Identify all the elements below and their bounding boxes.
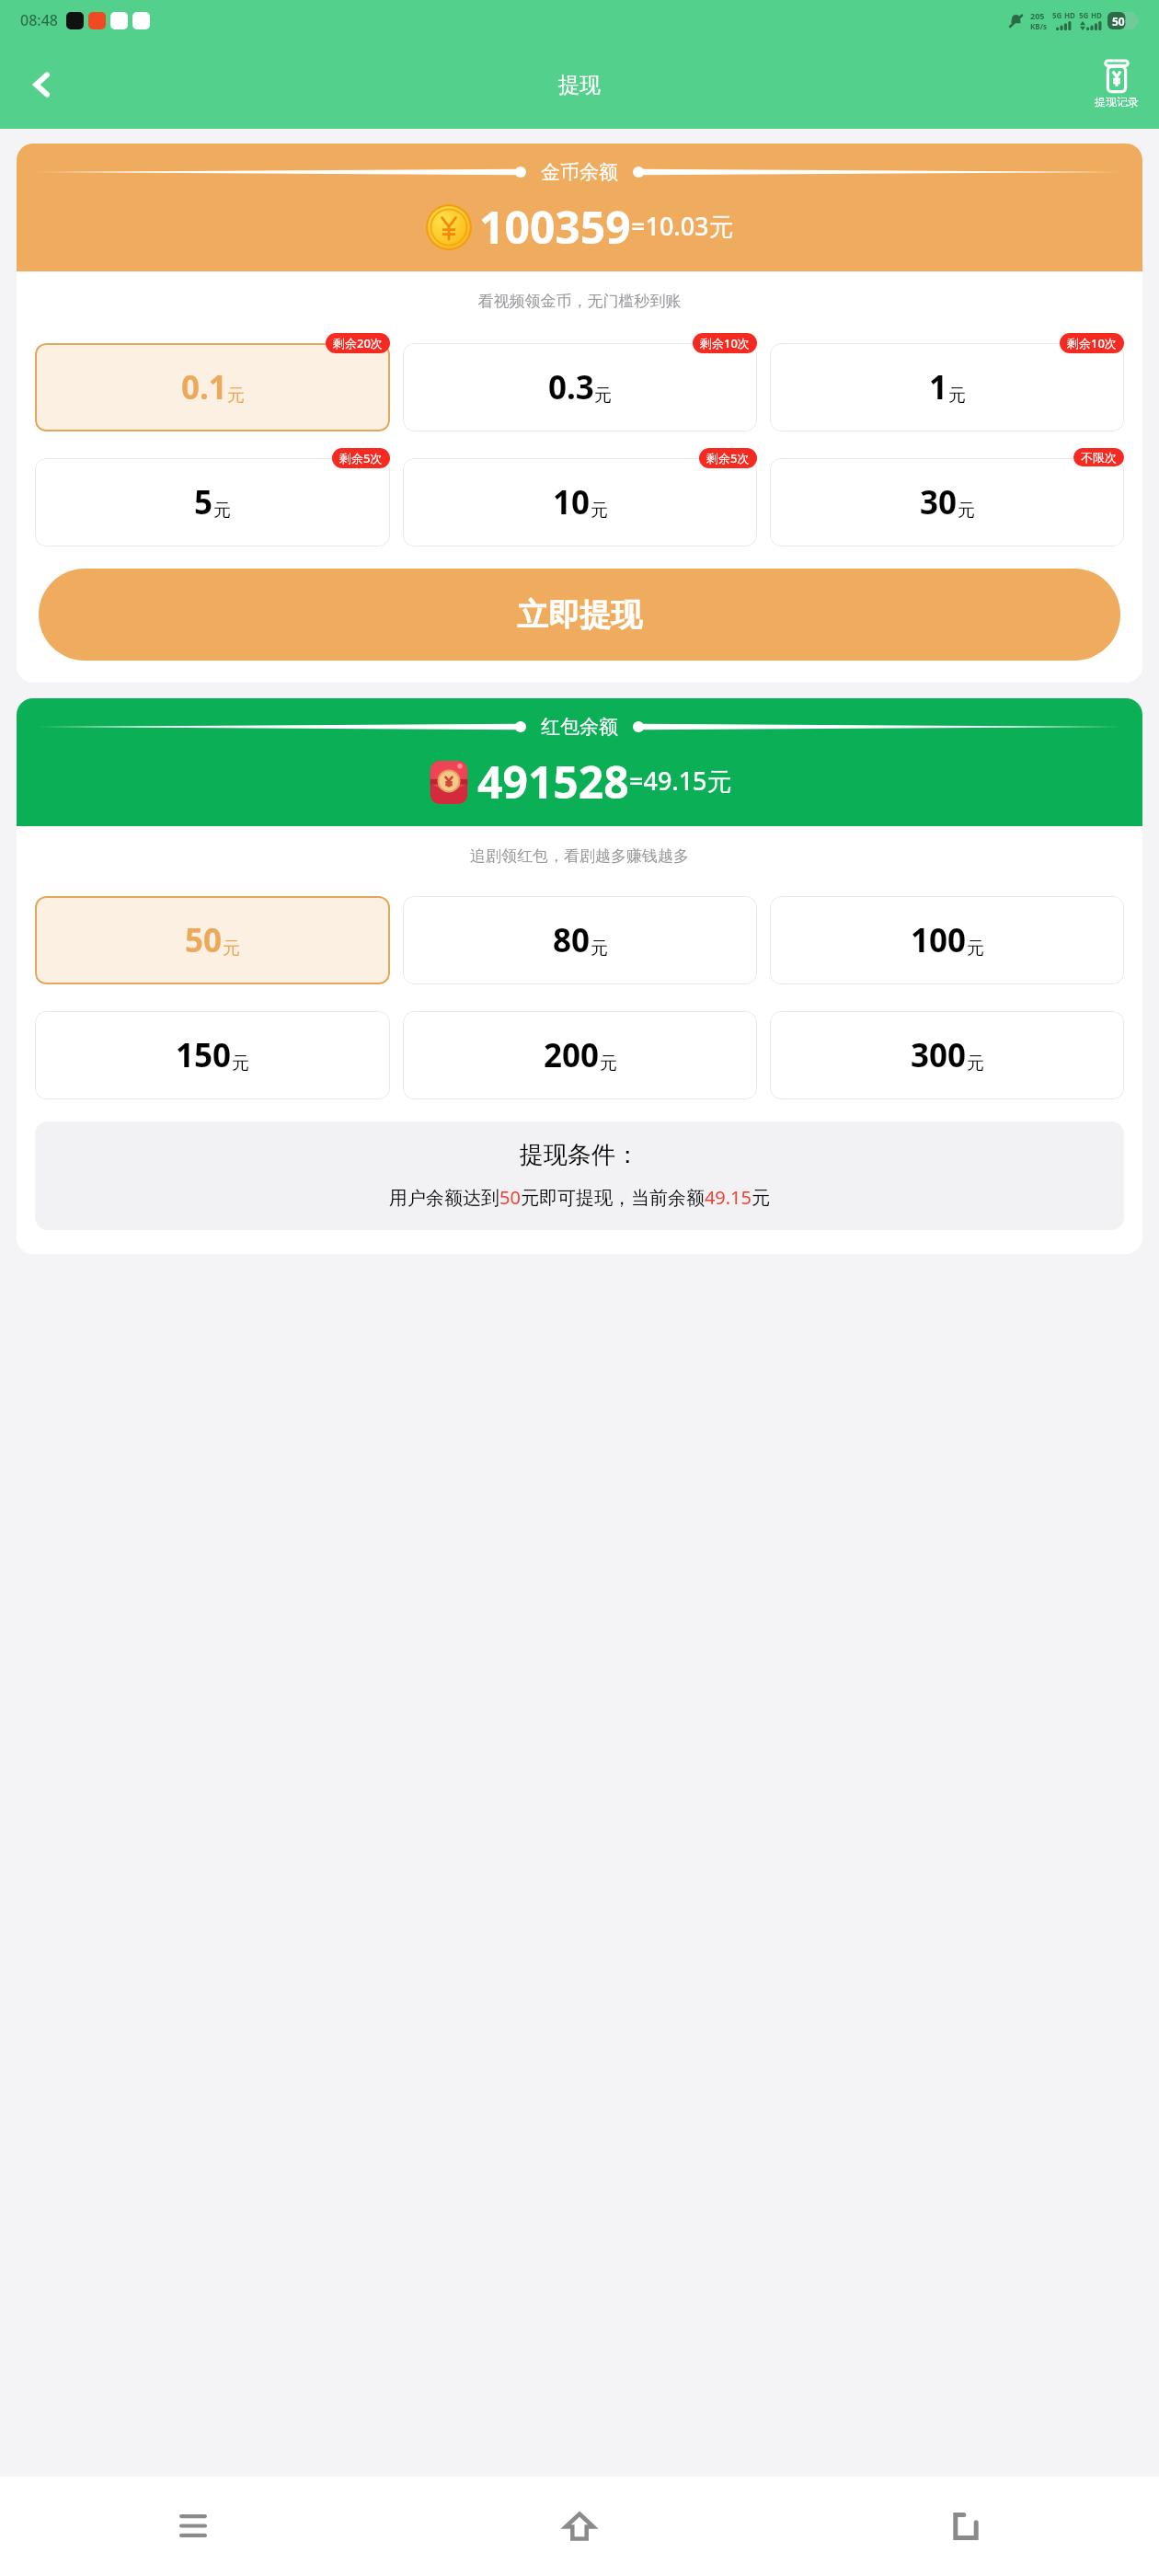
staticText: 50 xyxy=(185,918,223,962)
staticText: 剩余10次 xyxy=(700,335,750,351)
button[interactable]: 30 xyxy=(770,458,1124,546)
staticText: 元 xyxy=(594,385,612,407)
button[interactable]: 5 xyxy=(35,458,390,546)
button[interactable]: 80 xyxy=(403,896,757,984)
staticText: 元 xyxy=(967,1052,984,1075)
button[interactable]: 立即提现 xyxy=(39,569,1120,661)
staticText: 205 xyxy=(1030,10,1045,21)
button[interactable]: 200 xyxy=(403,1011,757,1099)
staticText: 200 xyxy=(544,1033,600,1077)
button[interactable]: Back xyxy=(9,52,75,118)
staticText: 剩余5次 xyxy=(339,450,383,466)
staticText: 5G xyxy=(1052,10,1062,20)
staticText: 元 xyxy=(223,937,240,960)
staticText: 元 xyxy=(227,385,245,407)
button[interactable]: 0.1 xyxy=(35,343,390,431)
staticText: 491528 xyxy=(477,752,629,811)
button[interactable]: 提现记录 xyxy=(1091,61,1142,109)
staticText: =10.03元 xyxy=(631,209,734,243)
button[interactable]: Home xyxy=(386,2477,773,2576)
button[interactable]: 10 xyxy=(403,458,757,546)
staticText: 立即提现 xyxy=(517,595,642,635)
staticText: 金币余额 xyxy=(541,160,618,184)
staticText: 08:48 xyxy=(20,10,58,30)
staticText: 150 xyxy=(176,1033,232,1077)
staticText: 用户余额达到50元即可提现，当前余额49.15元 xyxy=(389,1185,770,1210)
staticText: 100359 xyxy=(479,197,631,257)
staticText: 0.3 xyxy=(548,365,594,409)
button[interactable]: 1 xyxy=(770,343,1124,431)
button[interactable]: 50 xyxy=(35,896,390,984)
staticText: 元 xyxy=(591,937,608,960)
staticText: 剩余20次 xyxy=(333,335,383,351)
button[interactable]: 300 xyxy=(770,1011,1124,1099)
staticText: 元 xyxy=(232,1052,249,1075)
staticText: HD xyxy=(1091,10,1102,20)
staticText: 不限次 xyxy=(1081,450,1117,465)
staticText: 元 xyxy=(213,500,231,522)
staticText: 元 xyxy=(967,937,984,960)
staticText: 1 xyxy=(929,365,948,409)
button[interactable]: 0.3 xyxy=(403,343,757,431)
staticText: 10 xyxy=(553,480,591,524)
staticText: 元 xyxy=(958,500,975,522)
staticText: HD xyxy=(1064,10,1075,20)
staticText: 剩余5次 xyxy=(706,450,750,466)
button[interactable]: 150 xyxy=(35,1011,390,1099)
button[interactable]: 100 xyxy=(770,896,1124,984)
staticText: 5G xyxy=(1079,10,1089,20)
staticText: 30 xyxy=(920,480,958,524)
staticText: KB/s xyxy=(1030,21,1047,31)
staticText: 提现条件： xyxy=(520,1140,639,1170)
staticText: 元 xyxy=(591,500,608,522)
staticText: 追剧领红包，看剧越多赚钱越多 xyxy=(17,846,1142,866)
button[interactable]: Recents xyxy=(0,2477,386,2576)
staticText: 剩余10次 xyxy=(1067,335,1117,351)
button[interactable]: Back xyxy=(773,2477,1159,2576)
staticText: 50 xyxy=(1112,14,1125,29)
staticText: 300 xyxy=(911,1033,967,1077)
staticText: 看视频领金币，无门槛秒到账 xyxy=(17,292,1142,311)
staticText: 100 xyxy=(911,918,967,962)
staticText: 提现记录 xyxy=(1095,95,1139,109)
staticText: =49.15元 xyxy=(629,764,732,798)
staticText: 5 xyxy=(194,480,213,524)
staticText: 红包余额 xyxy=(541,715,618,739)
staticText: 元 xyxy=(948,385,966,407)
staticText: 元 xyxy=(600,1052,617,1075)
staticText: 0.1 xyxy=(181,365,227,409)
staticText: 80 xyxy=(553,918,591,962)
staticText: 提现 xyxy=(558,72,601,98)
